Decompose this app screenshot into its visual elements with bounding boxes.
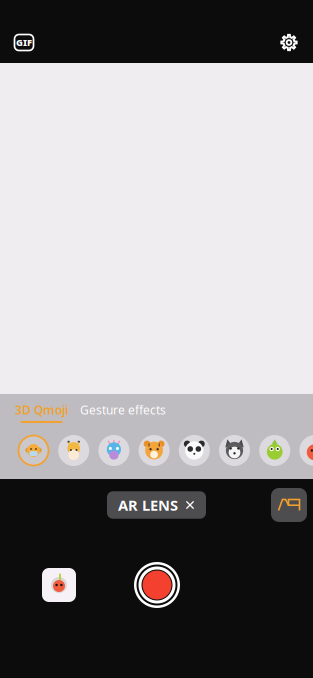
button[interactable]: AR effects	[271, 488, 307, 522]
button[interactable]: Effect 3	[98, 435, 129, 466]
button[interactable]: Effect 6	[219, 435, 250, 466]
staticText: GIF	[16, 36, 32, 49]
button[interactable]: Effect 2	[58, 435, 89, 466]
button[interactable]: GIF	[14, 34, 33, 50]
staticText: Gesture effects	[80, 402, 166, 418]
staticText: AR LENS	[118, 495, 178, 515]
button[interactable]: Effect 8	[299, 435, 313, 466]
button[interactable]: AR LENS	[107, 491, 206, 519]
button[interactable]: Settings	[280, 33, 298, 51]
button[interactable]: Monkey effect	[18, 435, 49, 466]
staticText: 3D Qmoji	[15, 402, 68, 418]
button[interactable]: Gallery	[42, 568, 76, 602]
button[interactable]: Effect 4	[139, 435, 170, 466]
button[interactable]: Gesture effects	[80, 402, 166, 418]
button[interactable]: Effect 7	[259, 435, 290, 466]
button[interactable]: 3D Qmoji	[15, 402, 68, 423]
button[interactable]: Record	[134, 562, 180, 608]
button[interactable]: Effect 5	[179, 435, 210, 466]
